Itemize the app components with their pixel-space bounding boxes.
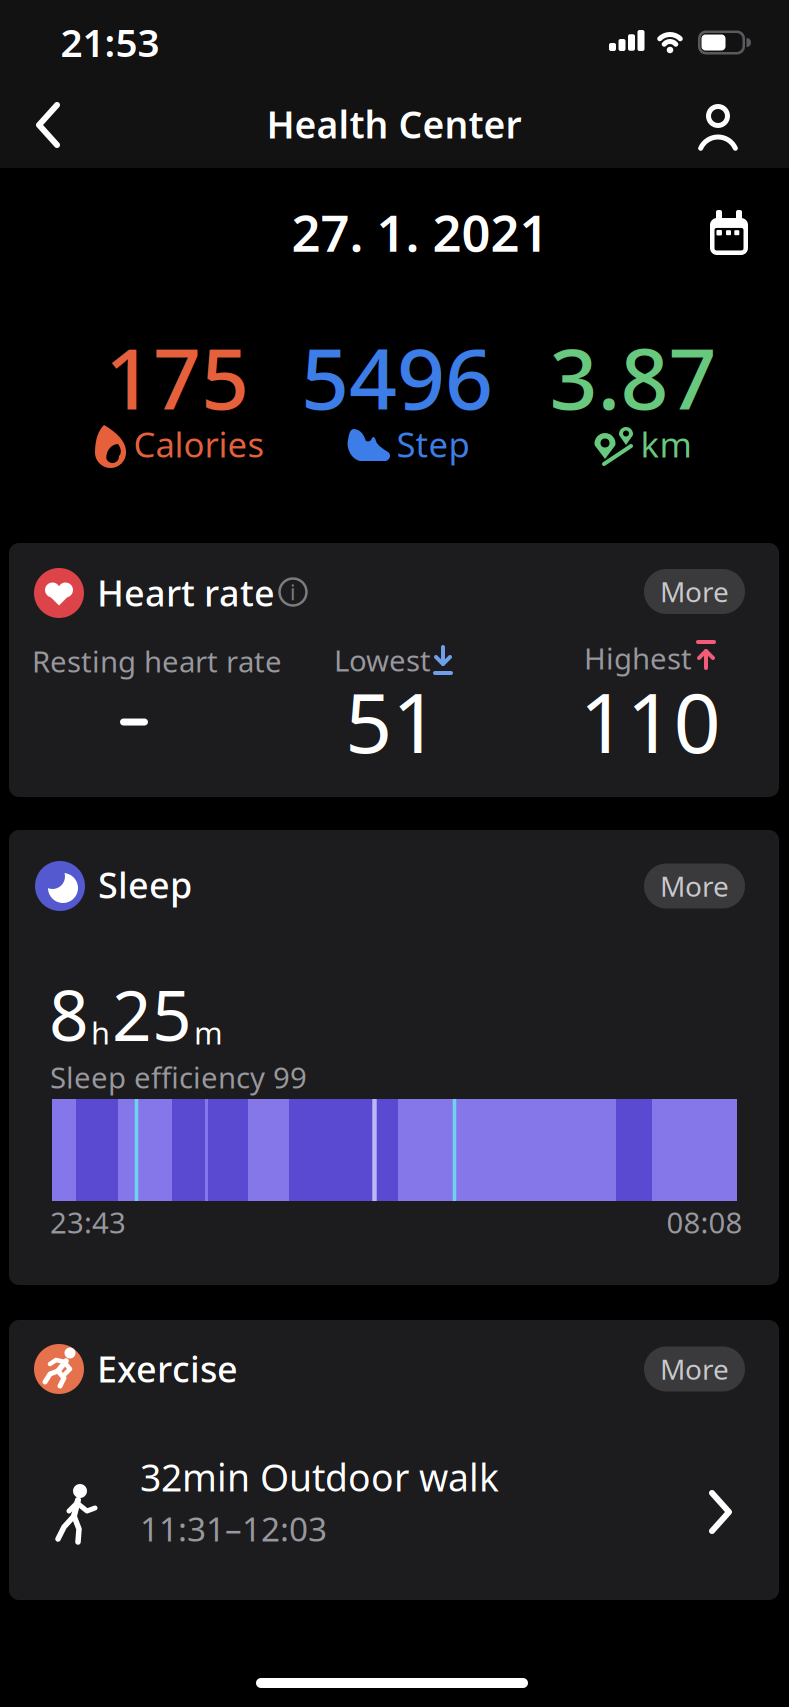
- staticText: km: [640, 421, 691, 467]
- button[interactable]: Profile: [690, 98, 746, 156]
- staticText: 8: [49, 968, 89, 1060]
- button[interactable]: More: [644, 569, 745, 614]
- staticText: 25: [112, 968, 192, 1060]
- button[interactable]: More: [644, 1346, 745, 1391]
- staticText: Heart rate: [97, 569, 275, 616]
- staticText: Exercise: [97, 1345, 238, 1392]
- staticText: 23:43: [50, 1203, 126, 1242]
- staticText: More: [660, 867, 729, 905]
- staticText: h: [91, 1012, 110, 1053]
- staticText: 32min Outdoor walk: [140, 1452, 499, 1502]
- button[interactable]: Heart rate info: [276, 575, 310, 609]
- staticText: Sleep efficiency 99: [50, 1058, 307, 1097]
- staticText: 51: [345, 666, 439, 776]
- staticText: 27. 1. 2021: [291, 198, 548, 266]
- button[interactable]: More: [644, 863, 745, 908]
- staticText: 11:31–12:03: [140, 1506, 327, 1551]
- staticText: Resting heart rate: [32, 642, 282, 681]
- staticText: m: [194, 1012, 223, 1053]
- staticText: i: [290, 578, 296, 606]
- staticText: Calories: [133, 421, 264, 467]
- staticText: More: [660, 573, 729, 610]
- staticText: Highest: [584, 639, 692, 678]
- staticText: 5496: [301, 321, 493, 433]
- button[interactable]: 32min Outdoor walk: [26, 1442, 770, 1582]
- staticText: Step: [396, 421, 469, 467]
- staticText: 110: [579, 666, 720, 776]
- staticText: Health Center: [266, 99, 521, 149]
- staticText: 3.87: [549, 321, 716, 433]
- staticText: 08:08: [666, 1202, 742, 1241]
- staticText: Lowest: [334, 641, 431, 680]
- staticText: 175: [105, 321, 249, 433]
- button[interactable]: Back: [20, 97, 76, 153]
- button[interactable]: Select date: [707, 207, 751, 257]
- staticText: 21:53: [60, 16, 159, 68]
- staticText: Sleep: [98, 861, 192, 908]
- staticText: More: [660, 1350, 729, 1388]
